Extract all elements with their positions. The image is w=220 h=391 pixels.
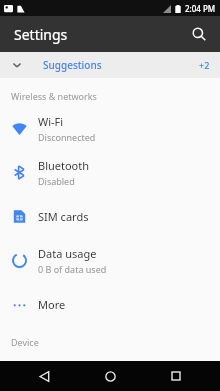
button[interactable]: Bluetooth (0, 150, 220, 194)
staticText: Bluetooth (38, 158, 90, 173)
button[interactable]: Home (88, 361, 132, 391)
staticText: Settings (14, 25, 68, 44)
staticText: 0 B of data used (38, 263, 107, 275)
staticText: Data usage (38, 246, 97, 261)
staticText: Wi-Fi (38, 114, 64, 129)
button[interactable]: Data usage (0, 238, 220, 282)
staticText: Suggestions (43, 58, 102, 72)
staticText: Wireless & networks (11, 90, 97, 102)
button[interactable]: Back (22, 361, 66, 391)
button[interactable]: More (0, 282, 220, 326)
staticText: SIM cards (38, 209, 89, 224)
staticText: +2 (199, 59, 210, 71)
staticText: More (38, 297, 66, 312)
button[interactable]: Wi-Fi (0, 106, 220, 150)
button[interactable]: Recent apps (154, 361, 198, 391)
staticText: Disconnected (38, 131, 96, 143)
button[interactable]: Suggestions (0, 52, 220, 78)
button[interactable]: Search (184, 19, 214, 49)
staticText: Disabled (38, 175, 75, 187)
button[interactable]: SIM cards (0, 194, 220, 238)
staticText: 2:04 PM (185, 3, 216, 14)
staticText: Device (11, 336, 39, 348)
